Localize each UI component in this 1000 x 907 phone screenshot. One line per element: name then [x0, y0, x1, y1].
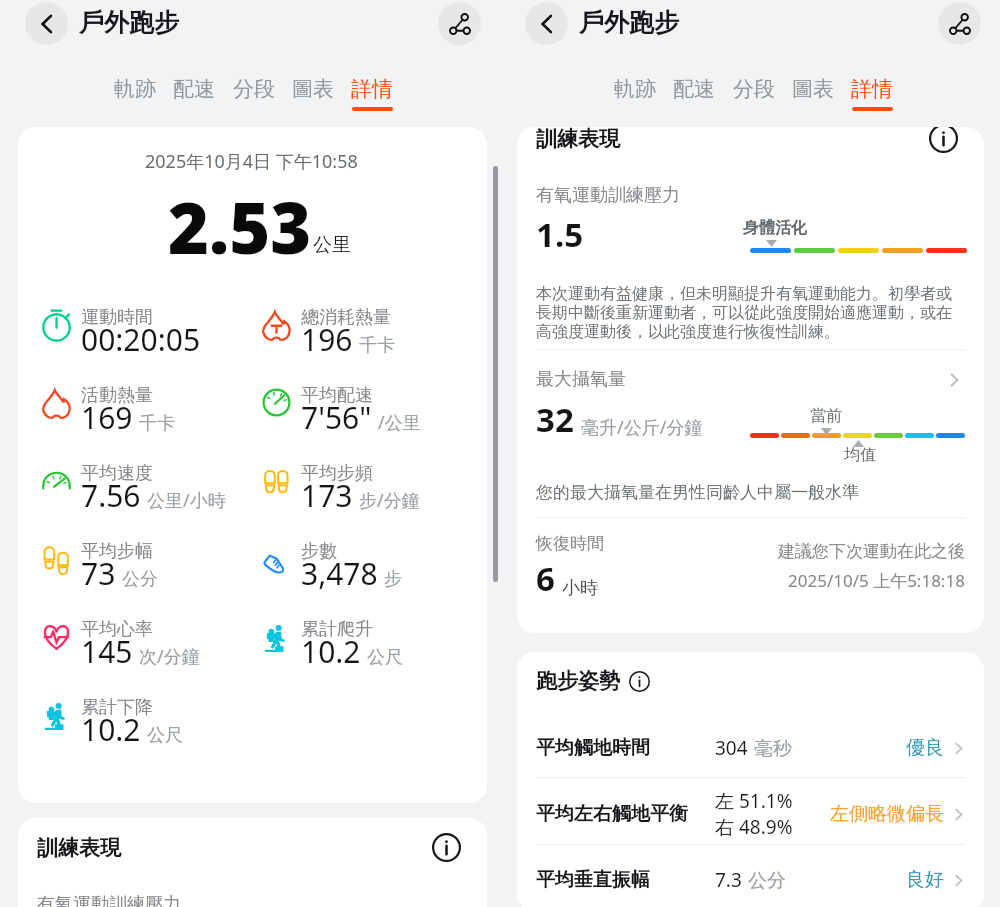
staticText: 平均步頻: [301, 462, 373, 485]
button[interactable]: 平均配速: [263, 374, 478, 430]
staticText: 10.2: [81, 709, 141, 750]
staticText: 小時: [562, 577, 598, 600]
staticText: 7'56": [301, 397, 372, 438]
staticText: 步/分鐘: [359, 488, 420, 513]
staticText: 平均左右觸地平衡: [536, 802, 688, 826]
staticText: 千卡: [139, 412, 175, 435]
button[interactable]: 平均觸地時間: [536, 718, 969, 778]
staticText: 左側略微偏長: [830, 802, 944, 826]
staticText: 訓練表現: [37, 835, 121, 861]
button[interactable]: Back: [25, 2, 68, 45]
staticText: 公分: [122, 568, 158, 591]
other: Info: [432, 833, 461, 862]
button[interactable]: 配速: [664, 76, 723, 118]
staticText: 右 48.9%: [715, 814, 793, 840]
staticText: 當前: [810, 406, 842, 426]
button[interactable]: 平均心率: [43, 608, 258, 664]
staticText: 分段: [233, 76, 275, 102]
button[interactable]: 軌跡: [605, 76, 664, 118]
staticText: 優良: [906, 736, 944, 760]
staticText: 有氧運動訓練壓力: [37, 893, 181, 907]
staticText: 173: [301, 475, 353, 516]
staticText: 公尺: [367, 646, 403, 669]
staticText: 詳情: [351, 76, 393, 102]
staticText: 建議您下次運動在此之後: [778, 541, 965, 562]
staticText: 您的最大攝氧量在男性同齡人中屬一般水準: [536, 482, 859, 503]
staticText: 196: [301, 319, 353, 360]
staticText: 3,478: [301, 553, 378, 594]
button[interactable]: 平均速度: [43, 452, 258, 508]
staticText: 總消耗熱量: [301, 306, 391, 329]
button[interactable]: 圖表: [283, 76, 342, 118]
staticText: 累計爬升: [301, 618, 373, 641]
button[interactable]: 總消耗熱量: [263, 296, 478, 352]
staticText: 1.5: [536, 212, 584, 257]
staticText: 平均觸地時間: [536, 736, 650, 760]
staticText: 145: [81, 631, 133, 672]
button[interactable]: Share: [938, 2, 981, 45]
staticText: 毫秒: [754, 737, 792, 761]
staticText: 次/分鐘: [139, 644, 200, 669]
staticText: 2025年10月4日 下午10:58: [145, 149, 358, 174]
button[interactable]: Share: [438, 2, 481, 45]
staticText: 步數: [301, 540, 337, 563]
staticText: 169: [81, 397, 133, 438]
staticText: 左 51.1%: [715, 788, 793, 814]
staticText: /公里: [378, 410, 421, 435]
button[interactable]: 最大攝氧量: [536, 368, 965, 391]
button[interactable]: Back: [525, 2, 568, 45]
button[interactable]: 平均步幅: [43, 530, 258, 586]
staticText: 平均速度: [81, 462, 153, 485]
button[interactable]: 累計下降: [43, 686, 258, 742]
staticText: 2025/10/5 上午5:18:18: [788, 569, 965, 592]
staticText: 本次運動有益健康，但未明顯提升有氧運動能力。初學者或長期中斷後重新運動者，可以從…: [536, 284, 956, 342]
button[interactable]: 分段: [224, 76, 283, 118]
staticText: 活動熱量: [81, 384, 153, 407]
staticText: 戶外跑步: [579, 7, 679, 38]
staticText: 軌跡: [114, 76, 156, 102]
staticText: 32: [536, 397, 574, 442]
staticText: 毫升/公斤/分鐘: [581, 415, 703, 440]
staticText: 公分: [748, 869, 786, 893]
staticText: 73: [81, 553, 116, 594]
staticText: 平均步幅: [81, 540, 153, 563]
button[interactable]: 圖表: [783, 76, 842, 118]
staticText: 恢復時間: [536, 533, 604, 554]
button[interactable]: 詳情: [842, 76, 901, 118]
staticText: 平均配速: [301, 384, 373, 407]
button[interactable]: 累計爬升: [263, 608, 478, 664]
staticText: 分段: [733, 76, 775, 102]
staticText: 千卡: [359, 334, 395, 357]
staticText: 身體活化: [743, 218, 807, 238]
staticText: 6: [536, 556, 555, 601]
staticText: 軌跡: [614, 76, 656, 102]
button[interactable]: 軌跡: [105, 76, 164, 118]
button[interactable]: 步數: [263, 530, 478, 586]
staticText: 公里: [313, 233, 351, 257]
staticText: 訓練表現: [536, 127, 620, 152]
staticText: 304: [715, 735, 748, 761]
staticText: 2.53: [168, 179, 312, 274]
button[interactable]: 詳情: [342, 76, 401, 118]
staticText: 最大攝氧量: [536, 368, 626, 391]
button[interactable]: 平均左右觸地平衡: [536, 784, 969, 844]
button[interactable]: 活動熱量: [43, 374, 258, 430]
staticText: 配速: [673, 76, 715, 102]
staticText: 有氧運動訓練壓力: [536, 184, 680, 207]
button[interactable]: 運動時間: [43, 296, 258, 352]
button[interactable]: 平均步頻: [263, 452, 478, 508]
staticText: 7.56: [81, 475, 141, 516]
staticText: 00:20:05: [81, 319, 201, 360]
staticText: 配速: [173, 76, 215, 102]
button[interactable]: 平均垂直振幅: [536, 850, 969, 907]
other: Info: [929, 127, 958, 153]
staticText: 戶外跑步: [79, 7, 179, 38]
staticText: 累計下降: [81, 696, 153, 719]
staticText: 公尺: [147, 724, 183, 747]
staticText: 公里/小時: [147, 488, 226, 513]
staticText: 均值: [844, 445, 876, 465]
button[interactable]: 配速: [164, 76, 223, 118]
button[interactable]: 分段: [724, 76, 783, 118]
other: Info: [629, 671, 650, 692]
staticText: 圖表: [792, 76, 834, 102]
